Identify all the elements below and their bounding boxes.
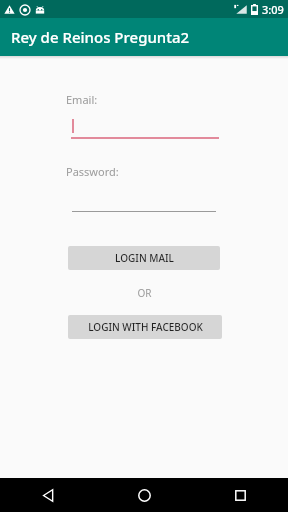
staticText: Rey de Reinos Pregunta2 bbox=[11, 27, 190, 47]
button[interactable]: Home bbox=[96, 478, 192, 512]
button[interactable]: LOGIN WITH FACEBOOK bbox=[68, 315, 222, 339]
button[interactable] bbox=[71, 118, 219, 139]
staticText: LOGIN WITH FACEBOOK bbox=[88, 320, 203, 334]
button[interactable]: Back bbox=[0, 478, 96, 512]
staticText: Email: bbox=[66, 92, 98, 107]
button[interactable] bbox=[72, 192, 216, 212]
button[interactable]: Recent apps bbox=[192, 478, 288, 512]
staticText: OR bbox=[137, 286, 152, 300]
button[interactable]: LOGIN MAIL bbox=[68, 246, 220, 270]
staticText: Password: bbox=[66, 164, 119, 179]
staticText: 3:09 bbox=[262, 2, 284, 17]
staticText: LOGIN MAIL bbox=[115, 251, 174, 265]
